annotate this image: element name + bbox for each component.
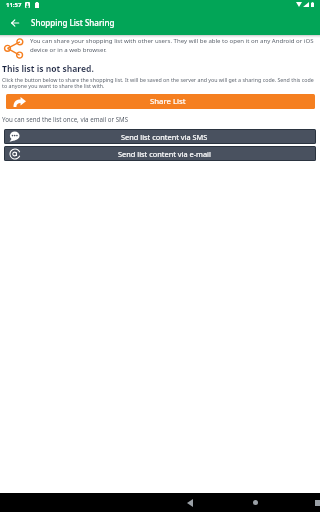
- staticText: Share List: [150, 96, 186, 107]
- staticText: Shopping List Sharing: [31, 17, 115, 28]
- button[interactable]: Back: [178, 493, 202, 512]
- button[interactable]: Send list content via SMS: [4, 129, 316, 144]
- staticText: 11:57: [6, 1, 22, 9]
- staticText: Send list content via SMS: [121, 132, 208, 142]
- button[interactable]: Back: [3, 13, 26, 32]
- staticText: Click the button below to share the shop…: [2, 76, 318, 90]
- staticText: Send list content via e-mail: [118, 149, 211, 159]
- button[interactable]: Recents: [306, 493, 320, 512]
- staticText: You can send the list once, via email or…: [2, 115, 129, 123]
- staticText: You can share your shopping list with ot…: [30, 37, 320, 54]
- button[interactable]: Home: [243, 493, 267, 512]
- staticText: This list is not shared.: [2, 63, 94, 75]
- button[interactable]: Send list content via e-mail: [4, 146, 316, 161]
- button[interactable]: Share List: [6, 94, 315, 109]
